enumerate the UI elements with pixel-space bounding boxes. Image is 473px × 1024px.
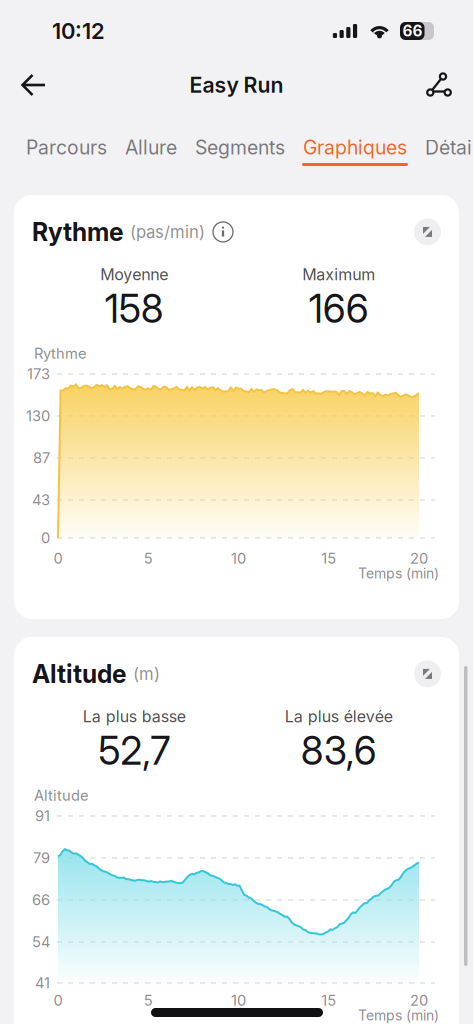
button[interactable]: Segments	[194, 108, 302, 172]
button[interactable]: Expand chart	[414, 660, 441, 687]
button[interactable]: Back	[20, 63, 68, 107]
staticText: 66	[402, 22, 422, 40]
staticText: 5	[144, 550, 153, 567]
staticText: 20	[410, 992, 428, 1009]
staticText: Parcours	[26, 136, 107, 159]
button[interactable]: Share	[405, 63, 453, 107]
staticText: 0	[53, 550, 62, 567]
staticText: 5	[144, 992, 153, 1009]
staticText: 91	[35, 807, 50, 825]
button[interactable]: Info	[212, 221, 234, 243]
staticText: La plus basse	[83, 707, 186, 726]
staticText: 87	[33, 449, 50, 467]
staticText: 20	[410, 550, 428, 567]
staticText: Rythme	[32, 217, 123, 247]
staticText: 166	[309, 285, 369, 332]
staticText: Moyenne	[100, 265, 168, 284]
staticText: 66	[32, 891, 50, 909]
staticText: Maximum	[302, 265, 375, 284]
button[interactable]: Graphiques	[302, 108, 424, 172]
button[interactable]: Parcours	[25, 108, 124, 172]
staticText: 130	[26, 407, 50, 425]
button[interactable]: Expand chart	[414, 218, 441, 245]
button[interactable]: Allure	[124, 108, 194, 172]
staticText: 10	[231, 550, 246, 567]
staticText: 52,7	[98, 727, 170, 774]
staticText: 0	[53, 992, 62, 1009]
staticText: 43	[32, 491, 50, 509]
staticText: 79	[33, 849, 50, 867]
staticText: 158	[105, 285, 164, 332]
staticText: Altitude	[34, 787, 89, 804]
staticText: (pas/min)	[130, 222, 205, 242]
staticText: 54	[32, 933, 50, 951]
staticText: 15	[321, 550, 336, 567]
staticText: Segments	[195, 136, 285, 159]
staticText: La plus élevée	[285, 707, 393, 726]
staticText: Temps (min)	[358, 565, 439, 582]
staticText: 41	[35, 974, 50, 992]
button[interactable]: Détails	[424, 108, 473, 172]
staticText: Rythme	[34, 345, 87, 362]
staticText: 15	[321, 992, 336, 1009]
staticText: 10:12	[52, 18, 105, 44]
staticText: Temps (min)	[358, 1007, 439, 1024]
staticText: 0	[41, 529, 50, 547]
staticText: 173	[27, 365, 50, 383]
staticText: 83,6	[301, 727, 377, 774]
staticText: Graphiques	[303, 136, 407, 159]
staticText: Altitude	[32, 659, 126, 689]
staticText: Easy Run	[189, 72, 283, 98]
staticText: (m)	[133, 664, 160, 684]
staticText: 10	[231, 992, 246, 1009]
staticText: Détails	[425, 136, 473, 159]
staticText: Allure	[125, 136, 177, 159]
